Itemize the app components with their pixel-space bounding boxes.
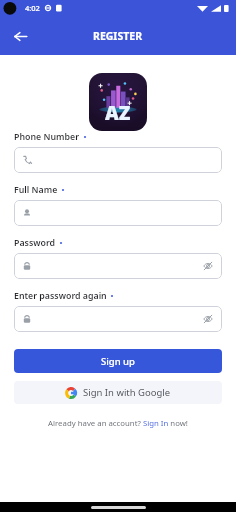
button[interactable] [14, 200, 222, 226]
button[interactable]: Already have an account? Sign In now! [14, 418, 222, 429]
button[interactable]: Sign In with Google [14, 381, 222, 404]
staticText: Sign In with Google [83, 386, 171, 399]
button[interactable]: Toggle password visibility [200, 311, 216, 327]
staticText: Sign up [101, 355, 135, 368]
staticText: Enter password again [14, 290, 107, 302]
button[interactable]: Toggle password visibility [14, 253, 222, 279]
staticText: REGISTER [93, 29, 143, 43]
staticText: Full Name [14, 184, 58, 196]
staticText: AZ [105, 100, 131, 126]
button[interactable]: Toggle password visibility [14, 306, 222, 332]
button[interactable]: Toggle password visibility [200, 258, 216, 274]
staticText: Phone Number [14, 131, 80, 143]
button[interactable] [14, 147, 222, 173]
button[interactable]: Back [6, 22, 34, 50]
staticText: Already have an account? Sign In now! [48, 418, 188, 429]
button[interactable]: Sign up [14, 349, 222, 373]
staticText: 4:02 [25, 3, 40, 13]
staticText: Password [14, 237, 56, 249]
